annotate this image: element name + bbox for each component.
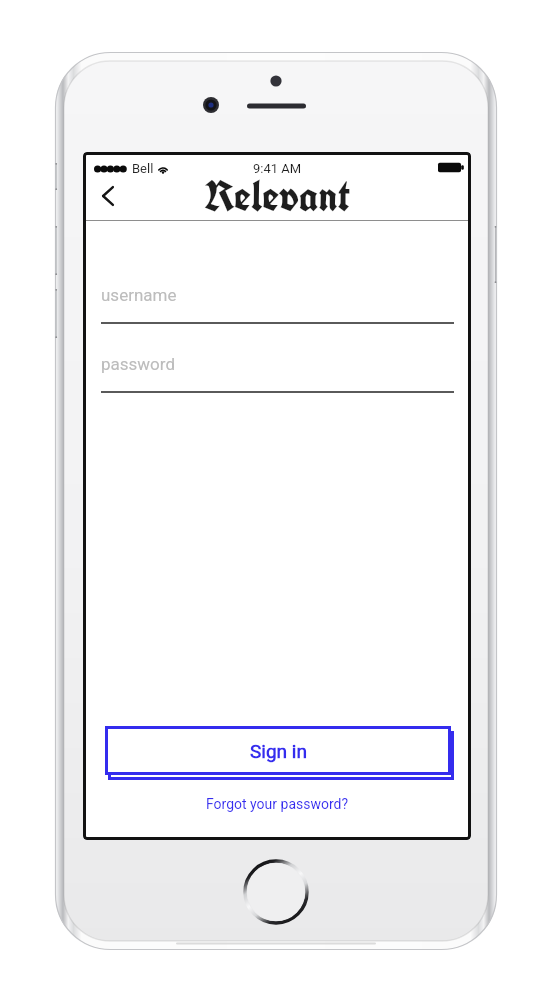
button[interactable]: Back	[86, 183, 126, 221]
staticText: Relevant	[204, 168, 350, 224]
button[interactable]: Sign in	[105, 726, 451, 775]
button[interactable]: Forgot your password?	[206, 796, 349, 812]
staticText: Sign in	[250, 740, 307, 762]
staticText: 9:41 AM	[253, 161, 302, 176]
staticText: password	[101, 354, 176, 374]
staticText: Bell	[132, 161, 154, 176]
staticText: username	[101, 285, 177, 305]
